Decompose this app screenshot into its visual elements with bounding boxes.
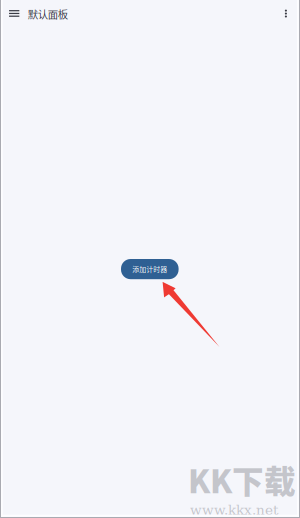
staticText: 默认面板 [28, 6, 68, 21]
button[interactable]: Menu [1, 0, 27, 26]
button[interactable]: 添加计时器 [121, 259, 179, 279]
staticText: www.kkx.net [190, 502, 278, 518]
button[interactable]: More options [274, 1, 298, 27]
staticText: KK下载 [188, 457, 296, 502]
staticText: 添加计时器 [132, 264, 167, 274]
